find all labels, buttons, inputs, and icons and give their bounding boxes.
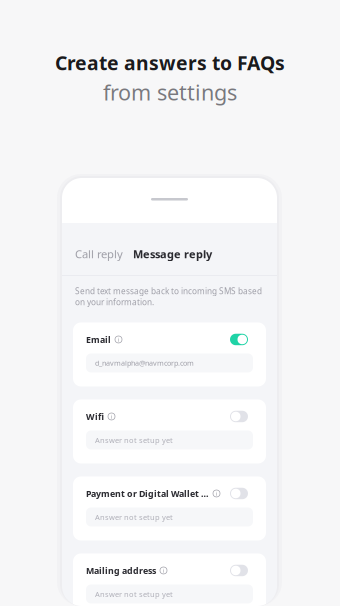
staticText: Answer not setup yet [95, 589, 173, 599]
button[interactable]: Message reply [133, 247, 212, 261]
button[interactable]: Call reply [75, 247, 123, 261]
staticText: Email [86, 334, 111, 345]
staticText: Wifi [86, 411, 104, 422]
button[interactable]: Answer not setup yet [86, 584, 253, 603]
staticText: i [110, 412, 112, 420]
staticText: Answer not setup yet [95, 512, 173, 522]
staticText: i [162, 566, 164, 574]
staticText: i [117, 335, 119, 343]
staticText: Mailing address [86, 565, 156, 576]
button[interactable]: Answer not setup yet [86, 507, 253, 526]
staticText: Answer not setup yet [95, 435, 173, 445]
button[interactable]: Turn on Mailing address [230, 563, 259, 578]
button[interactable]: Turn on Wifi [230, 409, 259, 424]
button[interactable]: Turn on Payment or Digital Wallet ID [230, 486, 259, 501]
button[interactable]: Answer not setup yet [86, 430, 253, 449]
staticText: Message reply [133, 247, 212, 261]
staticText: i [215, 489, 217, 497]
staticText: d_navmalpha@navmcorp.com [95, 358, 194, 368]
button[interactable]: Turn off Email [230, 332, 259, 347]
staticText: Call reply [75, 247, 123, 261]
staticText: Payment or Digital Wallet ID [86, 488, 209, 499]
staticText: Create answers to FAQs [55, 50, 285, 76]
staticText: Send text message back to incoming SMS b… [75, 286, 262, 307]
staticText: from settings [103, 78, 237, 106]
button[interactable]: d_navmalpha@navmcorp.com [86, 353, 253, 372]
